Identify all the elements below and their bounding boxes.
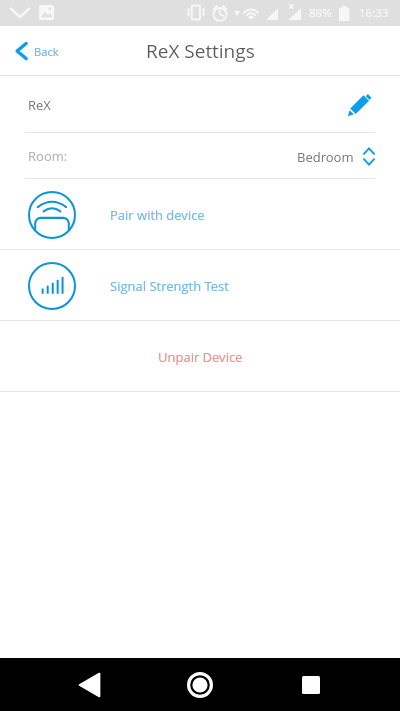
button[interactable]: Back bbox=[59, 659, 119, 710]
button[interactable]: Home bbox=[170, 659, 230, 710]
button[interactable]: Recent apps bbox=[281, 659, 341, 710]
staticText: Unpair Device bbox=[158, 348, 243, 366]
staticText: ReX Settings bbox=[146, 38, 255, 64]
button[interactable]: Unpair Device bbox=[0, 321, 400, 392]
staticText: ReX bbox=[28, 96, 51, 114]
staticText: Bedroom bbox=[297, 148, 354, 166]
button[interactable]: Edit name bbox=[340, 86, 378, 124]
button[interactable]: Signal Strength Test bbox=[0, 250, 400, 321]
button[interactable]: Bedroom bbox=[297, 147, 375, 166]
staticText: 88% bbox=[309, 5, 332, 21]
staticText: Room: bbox=[28, 147, 68, 165]
button[interactable]: Pair with device bbox=[0, 179, 400, 250]
staticText: Pair with device bbox=[110, 206, 205, 224]
staticText: Back bbox=[34, 44, 59, 59]
button[interactable]: Back bbox=[16, 42, 59, 60]
staticText: 16:33 bbox=[359, 5, 389, 21]
staticText: Signal Strength Test bbox=[110, 277, 229, 295]
